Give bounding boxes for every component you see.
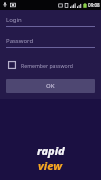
button[interactable]: Remember password checkbox <box>0 58 101 72</box>
button[interactable]: Password <box>6 35 95 48</box>
button[interactable]: OK <box>6 79 95 93</box>
other: Remember password checkbox <box>8 61 16 69</box>
staticText: Password <box>6 37 34 45</box>
staticText: view <box>38 158 63 173</box>
staticText: Remember password <box>21 62 73 69</box>
button[interactable]: Login <box>6 14 95 27</box>
staticText: Login <box>6 16 22 24</box>
staticText: OK <box>46 82 55 90</box>
staticText: 09:08 <box>88 2 100 8</box>
staticText: rapid <box>37 143 65 158</box>
